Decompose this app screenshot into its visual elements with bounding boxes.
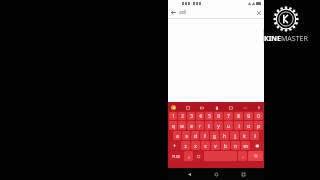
staticText: v <box>214 143 217 149</box>
button[interactable]: d <box>191 131 199 140</box>
button[interactable]: 4 <box>196 112 204 120</box>
staticText: n <box>234 143 237 149</box>
staticText: m <box>243 143 248 149</box>
staticText: b <box>224 143 227 149</box>
staticText: ?123 <box>172 154 180 159</box>
staticText: , <box>188 153 190 159</box>
staticText: j <box>234 133 236 139</box>
button[interactable]: Clear search <box>253 7 264 18</box>
button[interactable]: s <box>182 131 190 140</box>
staticText: 1 <box>172 113 175 119</box>
button[interactable]: e <box>187 121 195 130</box>
button[interactable]: Clipboard <box>185 105 190 110</box>
button[interactable]: Backspace <box>251 141 263 150</box>
button[interactable]: , <box>184 151 193 161</box>
staticText: y <box>217 123 220 129</box>
button[interactable]: 0 <box>254 112 263 120</box>
button[interactable]: 9 <box>244 112 253 120</box>
staticText: 9 <box>247 113 250 119</box>
button[interactable]: Assistant <box>171 105 176 110</box>
button[interactable]: Theme <box>214 105 219 110</box>
staticText: MASTER <box>281 34 308 44</box>
staticText: 0 <box>257 113 260 119</box>
button[interactable]: Back <box>168 7 179 18</box>
button[interactable]: Home <box>210 168 222 180</box>
button[interactable]: r <box>196 121 204 130</box>
staticText: r <box>199 123 201 129</box>
button[interactable]: y <box>214 121 223 130</box>
staticText: g <box>213 133 216 139</box>
button[interactable]: h <box>220 131 229 140</box>
button[interactable]: k <box>240 131 249 140</box>
button[interactable]: 2 <box>178 112 186 120</box>
staticText: q <box>172 123 175 129</box>
button[interactable]: j <box>230 131 239 140</box>
button[interactable]: l <box>250 131 259 140</box>
button[interactable]: n <box>231 141 240 150</box>
staticText: a <box>176 133 179 139</box>
button[interactable]: t <box>205 121 213 130</box>
button[interactable]: i <box>234 121 243 130</box>
button[interactable]: Search <box>248 151 263 161</box>
button[interactable]: 1 <box>169 112 177 120</box>
button[interactable]: a <box>173 131 181 140</box>
button[interactable]: GIF <box>199 105 204 110</box>
button[interactable]: adi <box>179 7 253 18</box>
staticText: u <box>227 123 230 129</box>
staticText: e <box>190 123 193 129</box>
button[interactable]: z <box>181 141 190 150</box>
button[interactable]: v <box>211 141 220 150</box>
staticText: z <box>184 143 187 149</box>
staticText: c <box>204 143 207 149</box>
staticText: k <box>243 133 246 139</box>
staticText: l <box>254 133 256 139</box>
button[interactable]: Voice input <box>256 105 261 110</box>
button[interactable]: o <box>244 121 253 130</box>
staticText: o <box>247 123 250 129</box>
button[interactable]: Settings <box>228 105 233 110</box>
button[interactable]: u <box>224 121 233 130</box>
button[interactable]: Recent apps <box>237 168 249 180</box>
button[interactable]: 5 <box>205 112 213 120</box>
button[interactable]: More <box>242 105 247 110</box>
staticText: p <box>257 123 260 129</box>
button[interactable]: w <box>178 121 186 130</box>
button[interactable]: x <box>191 141 200 150</box>
button[interactable]: 8 <box>234 112 243 120</box>
staticText: t <box>208 123 210 129</box>
button[interactable]: p <box>254 121 263 130</box>
button[interactable]: Back <box>183 168 195 180</box>
staticText: 4 <box>199 113 202 119</box>
staticText: 5 <box>208 113 211 119</box>
staticText: d <box>194 133 197 139</box>
staticText: 8 <box>237 113 240 119</box>
button[interactable]: q <box>169 121 177 130</box>
staticText: x <box>194 143 197 149</box>
staticText: 6 <box>217 113 220 119</box>
button[interactable]: Emoji <box>194 151 203 161</box>
button[interactable]: c <box>201 141 210 150</box>
staticText: s <box>185 133 188 139</box>
button[interactable]: b <box>221 141 230 150</box>
button[interactable]: 6 <box>214 112 223 120</box>
staticText: w <box>180 123 184 129</box>
staticText: h <box>223 133 226 139</box>
staticText: . <box>242 153 244 159</box>
button[interactable]: g <box>210 131 219 140</box>
button[interactable]: 7 <box>224 112 233 120</box>
button[interactable]: Shift <box>169 141 180 150</box>
staticText: adi <box>179 9 187 16</box>
button[interactable]: 3 <box>187 112 195 120</box>
staticText: 3 <box>190 113 193 119</box>
staticText: i <box>238 123 240 129</box>
staticText: 7 <box>227 113 230 119</box>
button[interactable]: ?123 <box>169 151 183 161</box>
button[interactable]: m <box>241 141 250 150</box>
staticText: f <box>204 133 206 139</box>
button[interactable]: . <box>238 151 247 161</box>
staticText: KINE <box>264 34 281 44</box>
button[interactable]: f <box>200 131 209 140</box>
staticText: 2 <box>181 113 184 119</box>
